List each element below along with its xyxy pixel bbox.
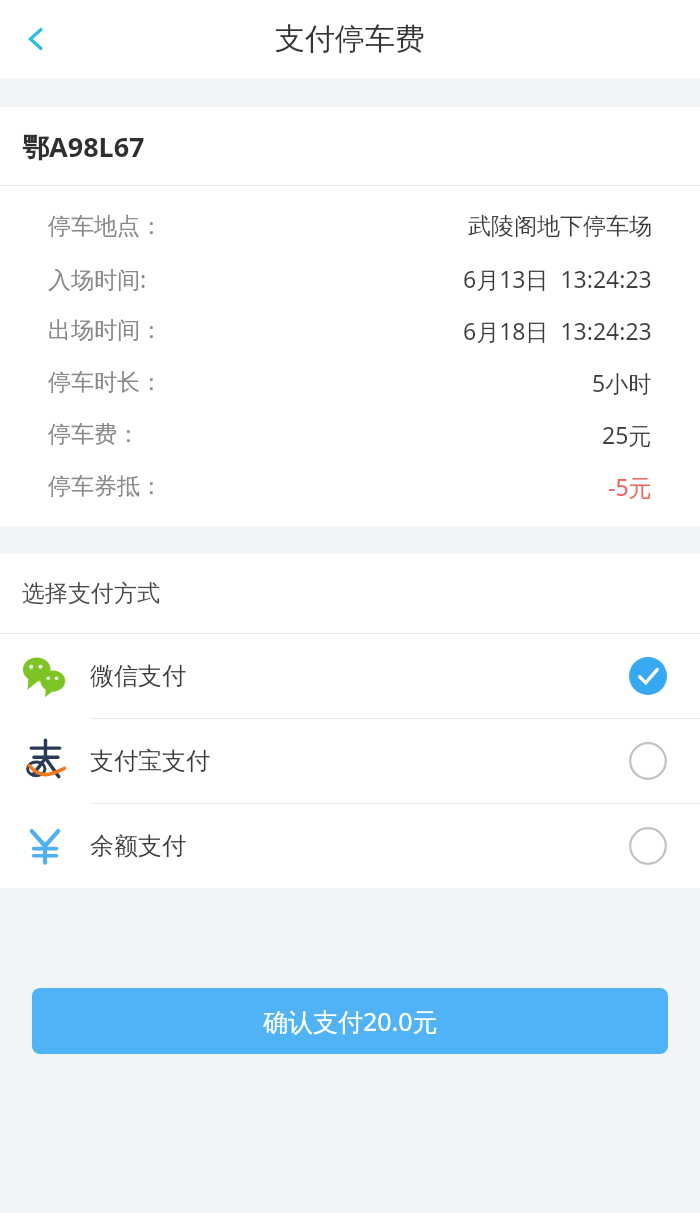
staticText: 选择支付方式 [22, 579, 160, 608]
button[interactable]: 微信支付 [0, 634, 700, 719]
button[interactable]: Back [0, 3, 72, 75]
staticText: 6月13日 13:24:23 [463, 263, 652, 294]
staticText: 停车券抵： [48, 472, 163, 501]
staticText: -5元 [608, 471, 652, 502]
staticText: 鄂A98L67 [22, 128, 145, 165]
staticText: 武陵阁地下停车场 [468, 212, 652, 241]
staticText: 6月18日 13:24:23 [463, 315, 652, 346]
staticText: 微信支付 [90, 661, 186, 691]
staticText: 余额支付 [90, 831, 186, 861]
staticText: 支付宝支付 [90, 746, 210, 776]
button[interactable]: 余额支付 [0, 804, 700, 888]
staticText: 25元 [602, 419, 652, 450]
staticText: 确认支付20.0元 [263, 1004, 438, 1038]
staticText: 出场时间： [48, 316, 163, 345]
staticText: 入场时间: [48, 263, 147, 294]
button[interactable]: 支付宝支付 [0, 719, 700, 804]
staticText: 支付停车费 [275, 20, 425, 58]
staticText: 5小时 [592, 367, 652, 398]
staticText: 停车费： [48, 420, 140, 449]
staticText: 停车地点： [48, 212, 163, 241]
staticText: 停车时长： [48, 368, 163, 397]
button[interactable]: 确认支付20.0元 [32, 988, 668, 1054]
